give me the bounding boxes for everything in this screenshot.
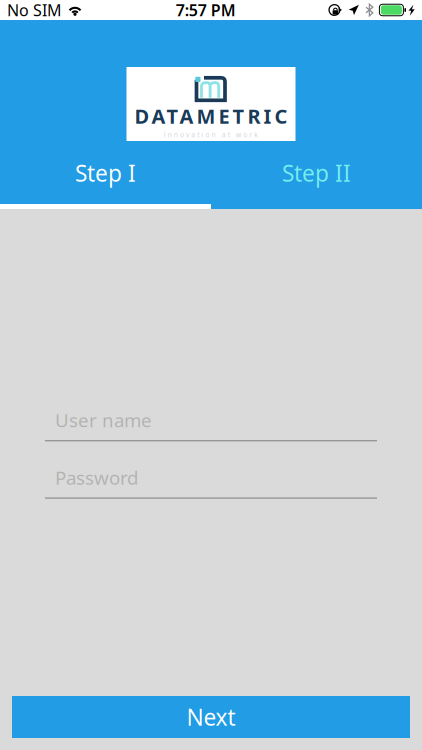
staticText: User name <box>55 408 152 432</box>
staticText: 7:57 PM <box>176 0 236 21</box>
button[interactable]: Step II <box>211 153 422 193</box>
button[interactable]: Next <box>12 696 410 738</box>
staticText: innovation at work <box>164 130 258 139</box>
staticText: No SIM <box>7 0 62 21</box>
staticText: DATAMETRIC <box>134 103 287 129</box>
button[interactable]: Step I <box>0 153 211 193</box>
staticText: Step II <box>282 158 351 188</box>
staticText: Next <box>186 702 235 732</box>
staticText: Password <box>55 465 138 490</box>
staticText: Step I <box>75 158 136 188</box>
